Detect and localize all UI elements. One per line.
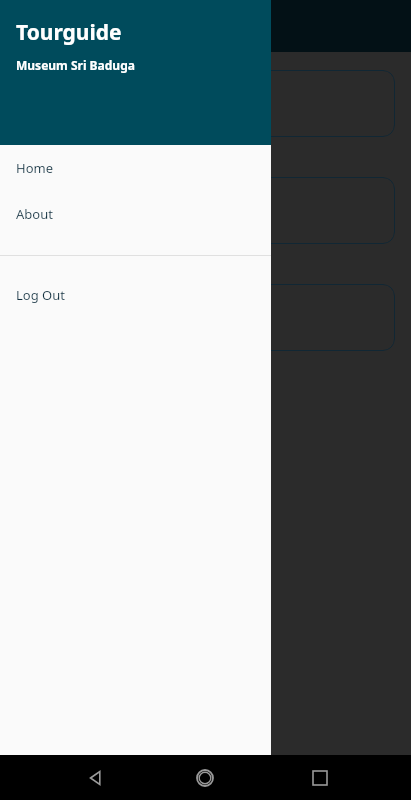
- button[interactable]: Log Out: [0, 272, 271, 318]
- button[interactable]: Museum Sri Baduga: [16, 70, 395, 137]
- staticText: Log Out: [16, 286, 65, 304]
- staticText: Tourguide: [16, 18, 122, 47]
- staticText: About: [16, 205, 53, 223]
- staticText: Home: [16, 159, 53, 177]
- button[interactable]: [0, 0, 411, 755]
- button[interactable]: About: [0, 191, 271, 237]
- button[interactable]: Back: [75, 758, 115, 798]
- staticText: Museum Sri Baduga: [16, 57, 135, 73]
- button[interactable]: Home: [185, 758, 225, 798]
- button[interactable]: Museum Sri Baduga: [16, 177, 395, 244]
- button[interactable]: Recent apps: [300, 758, 340, 798]
- button[interactable]: Museum Sri Baduga: [16, 284, 395, 351]
- button[interactable]: Home: [0, 145, 271, 191]
- staticText: Museum Sri Baduga: [32, 201, 165, 220]
